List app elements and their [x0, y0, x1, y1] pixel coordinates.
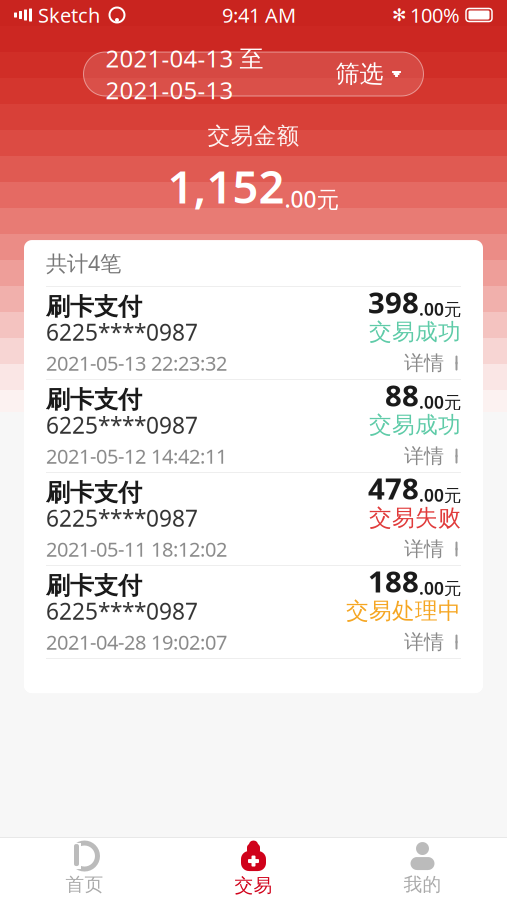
- button[interactable]: 刷卡支付: [24, 473, 483, 565]
- staticText: ✻: [392, 5, 407, 25]
- staticText: 6225****0987: [46, 410, 198, 440]
- staticText: 6225****0987: [46, 503, 198, 533]
- staticText: 详情: [404, 537, 444, 561]
- staticText: 2021-05-13 22:23:32: [46, 350, 227, 376]
- button[interactable]: 刷卡支付: [24, 380, 483, 472]
- staticText: 1,152: [167, 156, 284, 216]
- button[interactable]: 刷卡支付: [24, 566, 483, 658]
- button[interactable]: 刷卡支付: [24, 287, 483, 379]
- staticText: 详情: [404, 351, 444, 375]
- staticText: 筛选: [335, 59, 383, 89]
- staticText: .00元: [284, 184, 339, 214]
- staticText: 刷卡支付: [46, 292, 142, 321]
- staticText: 188: [368, 562, 419, 601]
- staticText: 478: [368, 469, 419, 508]
- staticText: 88: [385, 376, 419, 415]
- staticText: 398: [368, 283, 419, 322]
- staticText: 交易处理中: [346, 597, 461, 625]
- staticText: 交易成功: [369, 411, 461, 439]
- staticText: .00元: [419, 576, 461, 599]
- button[interactable]: 2021-04-13 至 2021-05-13: [83, 52, 423, 96]
- button[interactable]: 交易: [169, 838, 338, 900]
- staticText: 共计4笔: [46, 249, 121, 277]
- staticText: 6225****0987: [46, 596, 198, 626]
- staticText: 9:41 AM: [222, 2, 296, 28]
- staticText: .00元: [419, 297, 461, 320]
- staticText: 交易: [234, 874, 272, 897]
- staticText: .00元: [419, 390, 461, 413]
- staticText: 交易失败: [369, 504, 461, 532]
- staticText: 2021-05-12 14:42:11: [46, 443, 227, 469]
- staticText: 2021-04-13 至 2021-05-13: [105, 42, 263, 106]
- staticText: 刷卡支付: [46, 385, 142, 414]
- staticText: 详情: [404, 630, 444, 654]
- staticText: 我的: [403, 873, 441, 896]
- button[interactable]: 我的: [338, 838, 507, 900]
- staticText: Sketch: [38, 2, 100, 28]
- staticText: 交易金额: [207, 122, 299, 150]
- staticText: .00元: [419, 483, 461, 506]
- staticText: 刷卡支付: [46, 478, 142, 507]
- staticText: 交易成功: [369, 318, 461, 346]
- staticText: 首页: [65, 873, 103, 896]
- staticText: 刷卡支付: [46, 571, 142, 600]
- staticText: 详情: [404, 444, 444, 468]
- staticText: 6225****0987: [46, 317, 198, 347]
- staticText: 2021-05-11 18:12:02: [46, 536, 227, 562]
- staticText: 100%: [410, 2, 460, 28]
- staticText: 2021-04-28 19:02:07: [46, 629, 227, 655]
- button[interactable]: 首页: [0, 838, 169, 900]
